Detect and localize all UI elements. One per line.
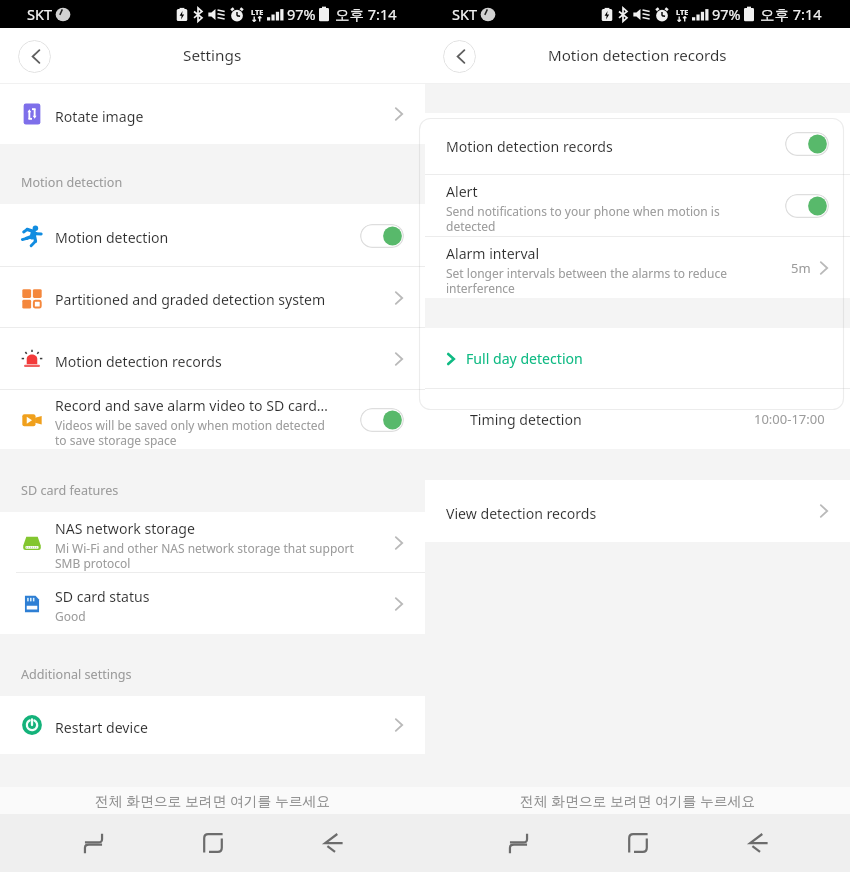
button[interactable]: Motion detection records <box>0 328 425 390</box>
staticText: Rotate image <box>55 107 144 126</box>
button[interactable]: Home <box>185 815 241 871</box>
button[interactable]: View detection records <box>425 480 850 542</box>
staticText: SKT <box>452 4 477 24</box>
button[interactable]: Toggle <box>360 224 404 248</box>
staticText: View detection records <box>446 504 597 523</box>
staticText: Alarm interval <box>446 244 540 263</box>
staticText: Mi Wi-Fi and other NAS network storage t… <box>55 540 354 571</box>
button[interactable]: Back <box>443 40 476 73</box>
button[interactable]: Record and save alarm video to SD card… <box>0 390 425 449</box>
staticText: Motion detection records <box>446 137 613 156</box>
button[interactable]: Back <box>305 815 361 871</box>
staticText: SKT <box>27 4 52 24</box>
button[interactable]: Partitioned and graded detection system <box>0 267 425 328</box>
staticText: Good <box>55 608 86 624</box>
button[interactable]: Restart device <box>0 696 425 754</box>
button[interactable]: NAS network storage <box>0 512 425 573</box>
staticText: SD card features <box>21 482 119 499</box>
staticText: Settings <box>183 45 242 66</box>
staticText: Record and save alarm video to SD card… <box>55 396 328 415</box>
button[interactable]: Motion detection <box>0 204 425 267</box>
staticText: 5m <box>791 259 811 277</box>
staticText: NAS network storage <box>55 519 195 538</box>
button[interactable]: Back <box>730 815 786 871</box>
button[interactable]: Recent apps <box>490 815 546 871</box>
staticText: Motion detection <box>21 174 123 191</box>
staticText: Motion detection records <box>548 45 727 66</box>
staticText: Alert <box>446 182 478 201</box>
staticText: Send notifications to your phone when mo… <box>446 203 720 234</box>
staticText: Restart device <box>55 718 148 737</box>
button[interactable]: Recent apps <box>65 815 121 871</box>
staticText: LTE <box>251 7 264 17</box>
staticText: 97% <box>287 4 316 24</box>
staticText: 97% <box>712 4 741 24</box>
button[interactable]: Toggle <box>785 132 829 156</box>
button[interactable]: SD card status <box>0 573 425 634</box>
staticText: LTE <box>676 7 689 17</box>
button[interactable]: Home <box>610 815 666 871</box>
staticText: Motion detection <box>55 228 169 247</box>
staticText: Set longer intervals between the alarms … <box>446 265 727 296</box>
staticText: Full day detection <box>466 349 583 368</box>
staticText: 오후 7:14 <box>335 4 397 24</box>
button[interactable]: Full day detection <box>425 328 850 389</box>
button[interactable]: Toggle <box>360 408 404 432</box>
staticText: 전체 화면으로 보려면 여기를 누르세요 <box>95 791 331 810</box>
button[interactable]: Rotate image <box>0 84 425 144</box>
staticText: 전체 화면으로 보려면 여기를 누르세요 <box>520 791 756 810</box>
staticText: 10:00-17:00 <box>754 410 825 428</box>
staticText: Timing detection <box>470 410 582 429</box>
staticText: 오후 7:14 <box>760 4 822 24</box>
staticText: Partitioned and graded detection system <box>55 290 326 309</box>
button[interactable]: Alarm interval <box>425 237 850 298</box>
button[interactable]: Motion detection records <box>425 113 850 175</box>
staticText: Videos will be saved only when motion de… <box>55 417 325 448</box>
staticText: SD card status <box>55 587 150 606</box>
staticText: Additional settings <box>21 666 132 683</box>
button[interactable]: Alert <box>425 175 850 237</box>
button[interactable]: Toggle <box>785 194 829 218</box>
button[interactable]: Back <box>18 40 51 73</box>
staticText: Motion detection records <box>55 352 222 371</box>
